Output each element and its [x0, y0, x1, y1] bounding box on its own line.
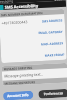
button[interactable]: MAIL ADDRESS [0, 37, 66, 52]
button[interactable]: EMAIL GATEWAY [0, 25, 66, 40]
staticText: SMS Accessibility [5, 3, 39, 10]
staticText: MAIL ADDRESS [41, 41, 64, 46]
staticText: Messaging [0, 0, 14, 4]
staticText: Message greeting text... [4, 71, 44, 79]
staticText: Account Info [7, 93, 29, 98]
staticText: MAKE FROM? [45, 52, 65, 58]
button[interactable]: +491740200443 [0, 14, 65, 29]
button[interactable]: Preferences [38, 89, 67, 99]
staticText: EMAIL GATEWAY [38, 30, 63, 35]
button[interactable]: Message greeting text... [2, 68, 67, 81]
staticText: SMS ADDRESS [42, 18, 63, 23]
staticText: SMS NUMBER INFORMATION [1, 11, 43, 17]
button[interactable]: MAKE FROM? [1, 48, 67, 63]
button[interactable]: Account Info [3, 91, 33, 100]
staticText: MESSAGE GREETING [4, 66, 33, 71]
staticText: MESSAGE SIGNATURE [4, 80, 36, 86]
staticText: Preferences [43, 91, 63, 96]
staticText: +491740200443 [1, 19, 28, 26]
